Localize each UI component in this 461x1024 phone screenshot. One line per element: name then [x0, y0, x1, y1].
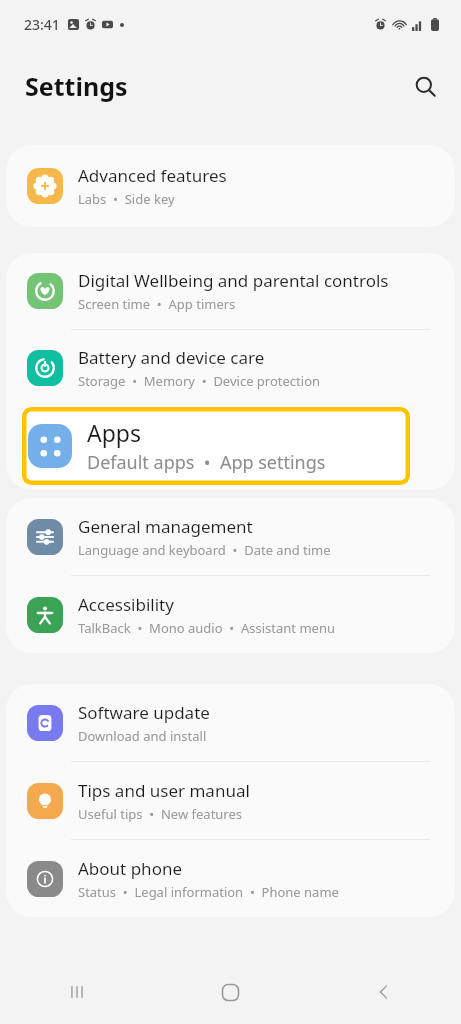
staticText: Screen time • App timers — [78, 295, 236, 313]
button[interactable]: General management — [6, 498, 455, 575]
staticText: Settings — [25, 69, 128, 103]
button[interactable]: Back — [307, 960, 461, 1024]
button[interactable]: Home — [153, 960, 307, 1024]
button[interactable]: Digital Wellbeing and parental controls — [6, 253, 455, 329]
button[interactable]: Software update — [6, 684, 455, 761]
button[interactable]: Accessibility — [6, 576, 455, 653]
staticText: TalkBack • Mono audio • Assistant menu — [78, 619, 335, 637]
button[interactable]: Advanced features — [6, 145, 455, 227]
staticText: 23:41 — [24, 15, 60, 34]
staticText: Status • Legal information • Phone name — [78, 883, 339, 901]
button[interactable]: Battery and device care — [6, 330, 455, 406]
staticText: Tips and user manual — [78, 779, 250, 802]
button[interactable]: Tips and user manual — [6, 762, 455, 839]
button[interactable]: Apps — [22, 407, 410, 485]
staticText: Apps — [87, 417, 142, 448]
staticText: About phone — [78, 857, 183, 880]
button[interactable]: Search — [403, 64, 447, 108]
staticText: Default apps • App settings — [87, 450, 326, 475]
button[interactable]: Recents — [0, 960, 153, 1024]
staticText: Accessibility — [78, 593, 174, 616]
staticText: Labs • Side key — [78, 190, 175, 208]
staticText: Advanced features — [78, 164, 227, 187]
staticText: Battery and device care — [78, 346, 265, 369]
staticText: Storage • Memory • Device protection — [78, 372, 321, 390]
staticText: Language and keyboard • Date and time — [78, 541, 331, 559]
button[interactable]: About phone — [6, 840, 455, 917]
staticText: Download and install — [78, 727, 207, 745]
staticText: Useful tips • New features — [78, 805, 243, 823]
staticText: General management — [78, 515, 253, 538]
staticText: Software update — [78, 701, 210, 724]
staticText: Digital Wellbeing and parental controls — [78, 269, 389, 292]
